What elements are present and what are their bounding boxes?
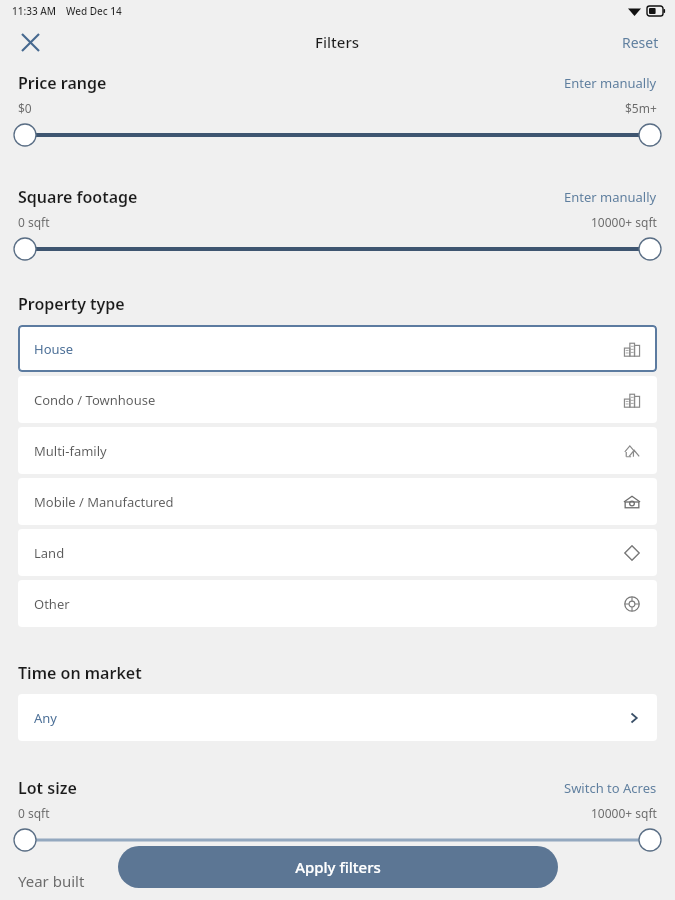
staticText: Any: [34, 709, 57, 727]
staticText: 0 sqft: [18, 805, 50, 821]
staticText: Square footage: [18, 186, 138, 208]
button[interactable]: Apply filters: [118, 846, 558, 888]
button[interactable]: Mobile / Manufactured: [18, 478, 657, 525]
staticText: 0 sqft: [18, 214, 50, 230]
button[interactable]: Other: [18, 580, 657, 627]
staticText: Apply filters: [295, 857, 381, 877]
staticText: Other: [34, 595, 70, 613]
button[interactable]: Multi-family: [18, 427, 657, 474]
button[interactable]: Switch to Acres: [564, 779, 657, 797]
staticText: 10000+ sqft: [591, 214, 657, 230]
staticText: Land: [34, 544, 65, 562]
staticText: Time on market: [18, 662, 142, 684]
staticText: Switch to Acres: [564, 779, 657, 797]
staticText: $0: [18, 100, 32, 116]
staticText: Wed Dec 14: [66, 4, 122, 18]
staticText: 10000+ sqft: [591, 805, 657, 821]
button[interactable]: Close: [10, 22, 50, 62]
staticText: Mobile / Manufactured: [34, 493, 174, 511]
button[interactable]: Any: [18, 694, 657, 741]
button[interactable]: Price range slider: [0, 122, 675, 148]
staticText: Enter manually: [564, 74, 657, 92]
button[interactable]: Enter manually: [564, 74, 657, 92]
staticText: Enter manually: [564, 188, 657, 206]
staticText: Year built: [18, 871, 85, 891]
staticText: Reset: [622, 33, 659, 52]
staticText: Filters: [315, 32, 360, 52]
staticText: 11:33 AM: [12, 4, 56, 18]
staticText: Property type: [18, 293, 125, 315]
button[interactable]: Condo / Townhouse: [18, 376, 657, 423]
button[interactable]: House: [18, 325, 657, 372]
button[interactable]: Land: [18, 529, 657, 576]
staticText: Multi-family: [34, 442, 107, 460]
staticText: $5m+: [625, 100, 657, 116]
staticText: House: [34, 340, 74, 358]
button[interactable]: Lot size slider: [0, 827, 675, 853]
button[interactable]: Enter manually: [564, 188, 657, 206]
button[interactable]: Square footage slider: [0, 236, 675, 262]
staticText: Price range: [18, 72, 107, 94]
staticText: Lot size: [18, 777, 77, 799]
button[interactable]: Reset: [618, 25, 663, 60]
staticText: Condo / Townhouse: [34, 391, 156, 409]
